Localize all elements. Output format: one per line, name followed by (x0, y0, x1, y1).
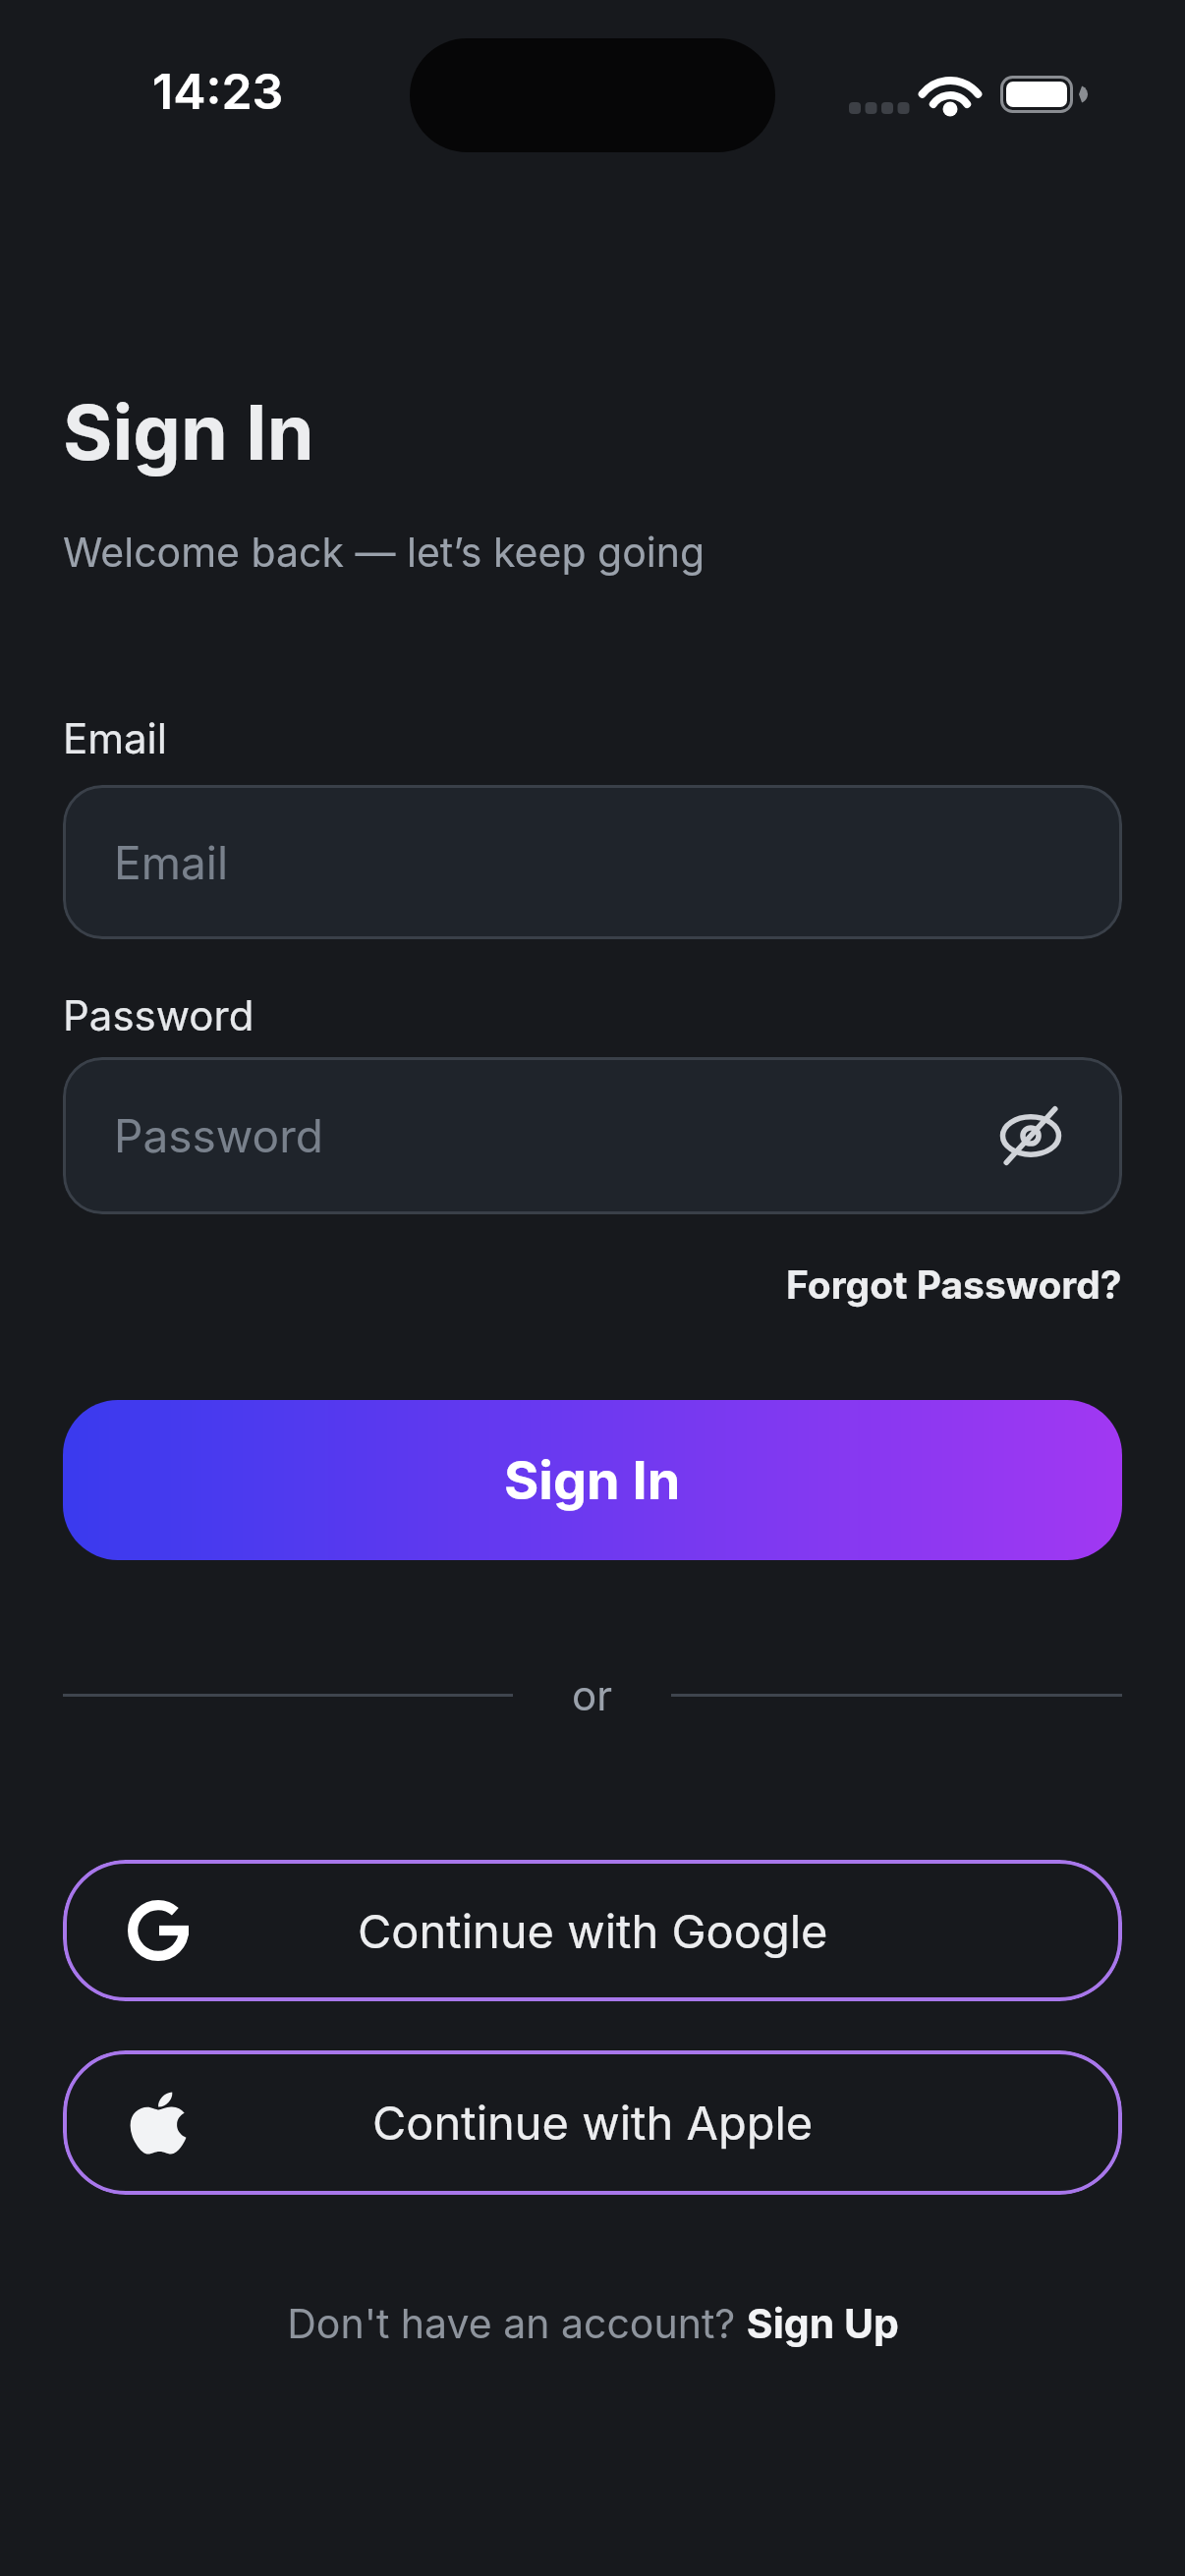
staticText: or (572, 1670, 612, 1720)
staticText: Sign In (63, 386, 314, 477)
button[interactable]: Continue with Apple (63, 2050, 1122, 2195)
staticText: Password (114, 1108, 323, 1163)
button[interactable]: Sign In (63, 1400, 1122, 1560)
button[interactable]: Don't have an account? Sign Up (63, 2299, 1122, 2348)
staticText: Password (63, 990, 254, 1040)
button[interactable]: Password (63, 1057, 1122, 1214)
button[interactable]: Email (63, 785, 1122, 939)
staticText: 14:23 (152, 62, 284, 121)
staticText: Continue with Apple (372, 2095, 814, 2151)
staticText: Sign In (504, 1448, 681, 1512)
button[interactable]: Continue with Google (63, 1860, 1122, 2001)
staticText: Don't have an account? Sign Up (287, 2299, 899, 2348)
staticText: Welcome back — let’s keep going (63, 528, 705, 577)
button[interactable]: Forgot Password? (786, 1261, 1122, 1308)
staticText: Email (114, 835, 229, 890)
staticText: Email (63, 713, 167, 763)
staticText: Forgot Password? (786, 1261, 1122, 1308)
staticText: Continue with Google (358, 1903, 828, 1959)
